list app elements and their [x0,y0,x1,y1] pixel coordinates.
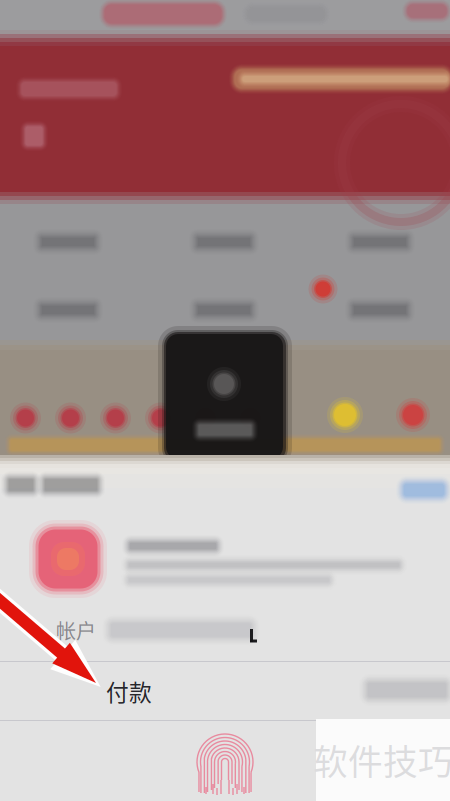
button[interactable]: 付款 [0,663,450,719]
staticText: 帐户 [56,615,96,644]
button[interactable]: 帐户 [0,606,450,656]
button[interactable]: 取消 [398,477,450,503]
staticText: 软件技巧 [313,735,450,785]
staticText: 付款 [106,675,152,707]
button[interactable]: App Store [2,470,132,506]
